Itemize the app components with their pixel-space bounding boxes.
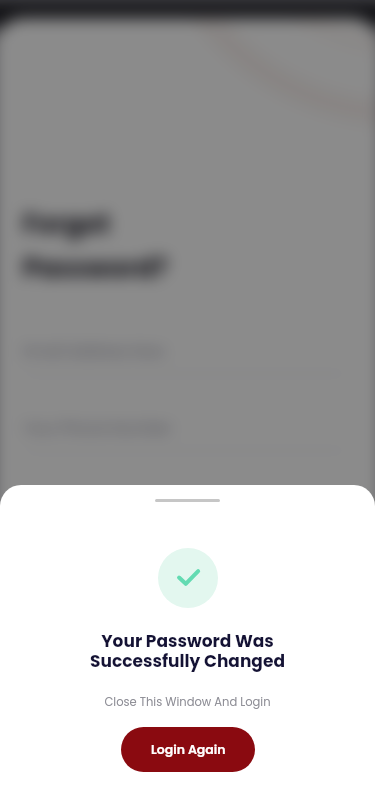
staticText: Close This Window And Login (104, 694, 271, 710)
button[interactable]: Drag handle (155, 499, 220, 502)
staticText: Login Again (151, 741, 226, 758)
staticText: Your Password Was Successfully Changed (90, 629, 285, 673)
button[interactable]: Login Again (121, 727, 255, 772)
other: Success (158, 548, 218, 608)
staticText: Forgot Password? (23, 206, 168, 286)
